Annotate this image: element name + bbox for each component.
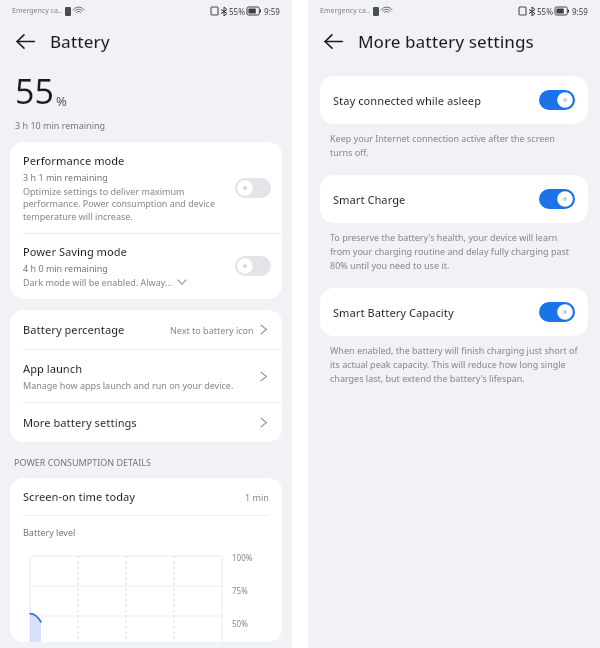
- button[interactable]: Back: [320, 28, 346, 54]
- button[interactable]: App launch: [10, 350, 282, 402]
- button[interactable]: Smart Battery Capacity: [320, 288, 588, 336]
- staticText: POWER CONSUMPTION DETAILS: [14, 456, 151, 468]
- staticText: 55%: [537, 6, 553, 17]
- button[interactable]: Power Saving mode toggle: [235, 256, 271, 276]
- staticText: 100%: [232, 552, 253, 563]
- button[interactable]: Stay connected while asleep: [320, 76, 588, 124]
- button[interactable]: Battery percentage: [10, 310, 282, 349]
- staticText: Optimize settings to deliver maximum per…: [23, 185, 227, 223]
- staticText: 3 h 10 min remaining: [15, 119, 106, 131]
- staticText: To preserve the battery's health, your d…: [330, 231, 578, 272]
- staticText: Manage how apps launch and run on your d…: [23, 379, 234, 391]
- button[interactable]: Smart Battery Capacity toggle: [539, 302, 575, 322]
- staticText: Emergency ca..: [320, 6, 370, 16]
- staticText: 75%: [232, 585, 248, 596]
- staticText: 55%: [229, 6, 245, 17]
- staticText: Battery level: [23, 526, 76, 538]
- staticText: Keep your Internet connection active aft…: [330, 132, 578, 159]
- button[interactable]: Back: [12, 28, 38, 54]
- staticText: Screen-on time today: [23, 489, 245, 504]
- button[interactable]: Smart Charge: [320, 175, 588, 223]
- staticText: 1 min: [245, 491, 269, 503]
- staticText: 4 h 0 min remaining: [23, 262, 108, 274]
- staticText: Smart Charge: [333, 192, 531, 207]
- staticText: Emergency ca..: [12, 6, 62, 16]
- staticText: When enabled, the battery will finish ch…: [330, 344, 578, 385]
- button[interactable]: Performance mode: [10, 142, 282, 233]
- button[interactable]: Stay connected while asleep toggle: [539, 90, 575, 110]
- staticText: Performance mode: [23, 153, 125, 168]
- staticText: %: [56, 92, 67, 110]
- staticText: Battery: [50, 30, 110, 53]
- staticText: 55: [15, 68, 54, 114]
- staticText: 3 h 1 min remaining: [23, 171, 108, 183]
- staticText: Battery percentage: [23, 322, 170, 337]
- staticText: Power Saving mode: [23, 244, 127, 259]
- button[interactable]: Performance mode toggle: [235, 178, 271, 198]
- button[interactable]: More battery settings: [10, 403, 282, 442]
- button[interactable]: Screen-on time today: [10, 478, 282, 515]
- staticText: Next to battery icon: [170, 324, 254, 336]
- staticText: Dark mode will be enabled. Alway...: [23, 276, 173, 288]
- staticText: 9:59: [264, 6, 280, 17]
- button[interactable]: Smart Charge toggle: [539, 189, 575, 209]
- staticText: Stay connected while asleep: [333, 93, 531, 108]
- staticText: 50%: [232, 618, 248, 629]
- staticText: App launch: [23, 361, 83, 376]
- button[interactable]: Power Saving mode: [10, 234, 282, 299]
- staticText: Smart Battery Capacity: [333, 305, 531, 320]
- staticText: More battery settings: [358, 30, 534, 53]
- staticText: 9:59: [572, 6, 588, 17]
- staticText: More battery settings: [23, 415, 258, 430]
